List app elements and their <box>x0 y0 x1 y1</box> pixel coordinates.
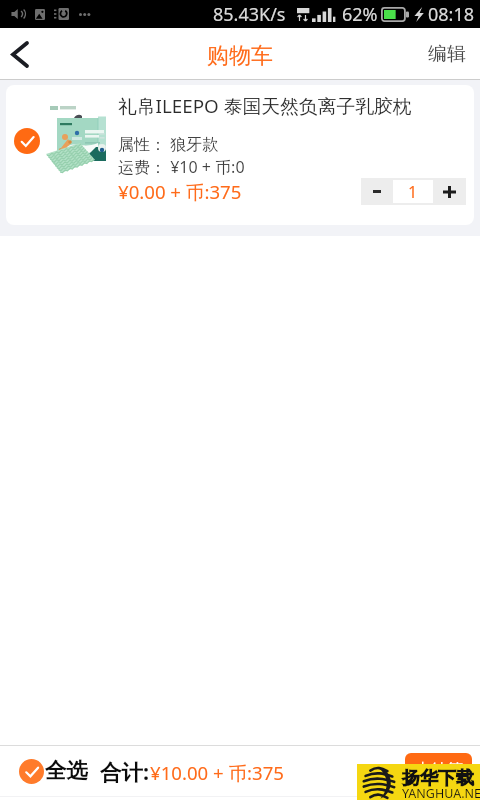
button[interactable]: Select item <box>14 128 40 154</box>
staticText: 1 <box>408 181 418 203</box>
staticText: 08:18 <box>428 2 475 27</box>
staticText: 全选 <box>45 757 88 784</box>
staticText: YANGHUA.NET <box>402 785 480 800</box>
staticText: 运费： ¥10 + 币:0 <box>118 156 245 178</box>
button[interactable]: Back <box>0 28 46 80</box>
staticText: ¥10.00 + 币:375 <box>150 760 284 785</box>
staticText: 85.43K/s <box>213 2 286 27</box>
staticText: 去结算 <box>415 760 463 780</box>
button[interactable]: 全选 <box>19 758 88 785</box>
button[interactable]: 1 <box>393 180 433 203</box>
staticText: 扬华下载 <box>402 767 474 790</box>
staticText: 属性： 狼牙款 <box>118 133 219 155</box>
button[interactable]: 编辑 <box>418 28 480 80</box>
staticText: 购物车 <box>207 42 273 70</box>
staticText: 合计: <box>100 757 150 786</box>
staticText: ¥0.00 + 币:375 <box>118 179 242 204</box>
button[interactable]: 去结算 <box>405 753 472 787</box>
staticText: 62% <box>342 2 378 27</box>
button[interactable]: Increase quantity <box>433 178 466 205</box>
staticText: 编辑 <box>428 42 466 66</box>
button[interactable]: Select item <box>6 85 474 225</box>
staticText: 礼帛ILEEPO 泰国天然负离子乳胶枕 <box>118 93 412 119</box>
button[interactable]: Decrease quantity <box>361 178 393 205</box>
